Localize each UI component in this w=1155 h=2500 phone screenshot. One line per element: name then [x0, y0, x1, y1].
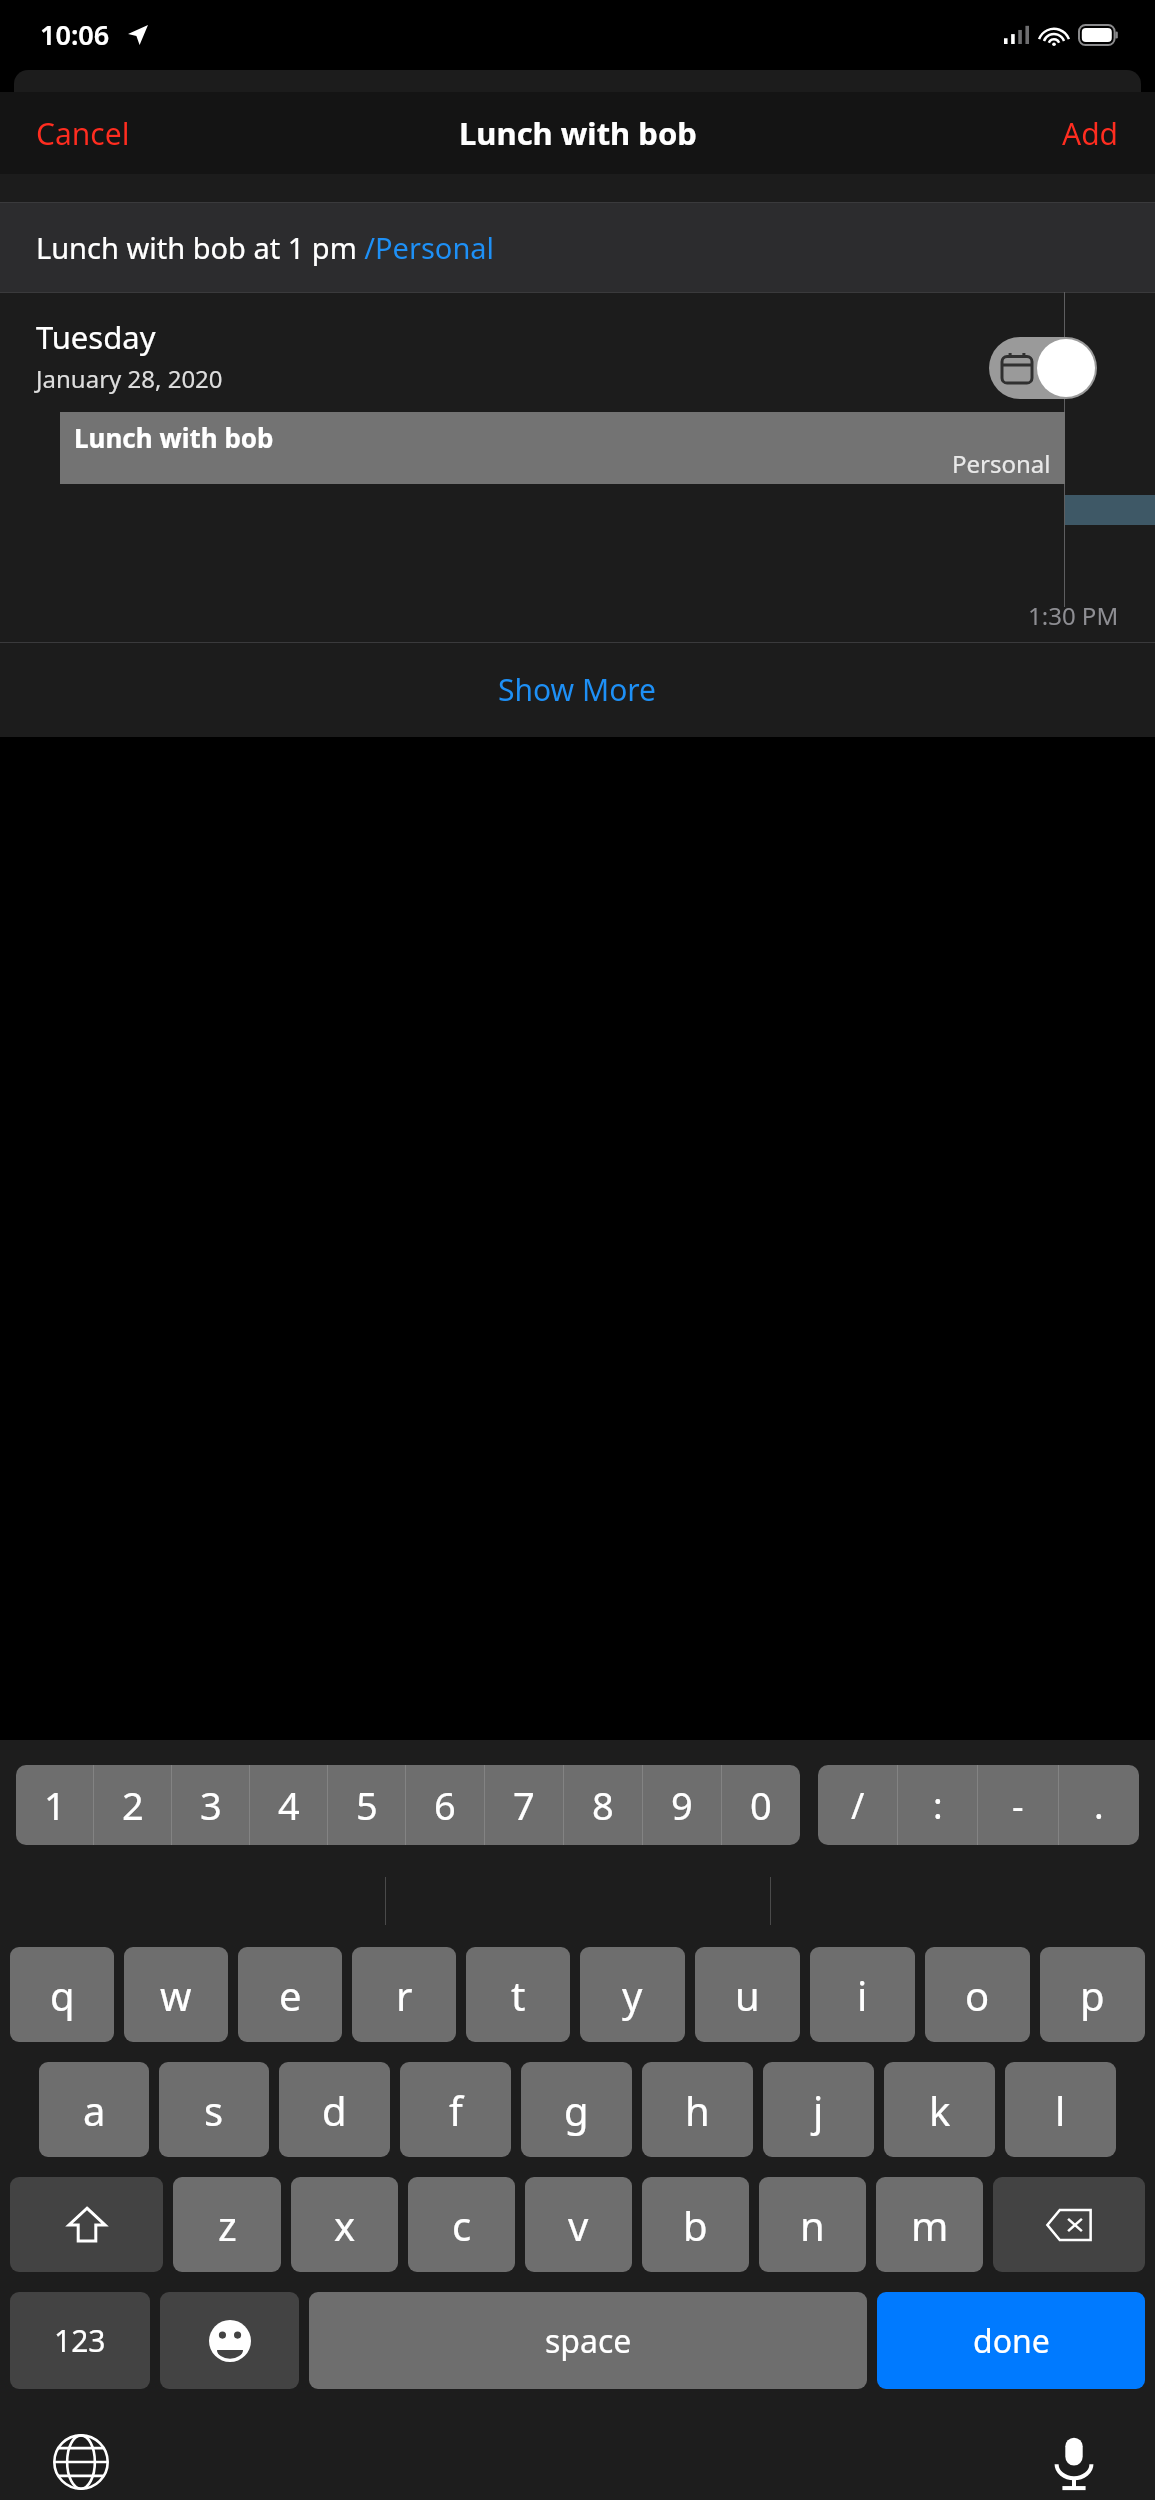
staticText: 3 — [200, 1779, 222, 1831]
button[interactable]: q — [10, 1947, 114, 2042]
button[interactable]: 5 — [328, 1765, 405, 1845]
staticText: : — [933, 1781, 943, 1830]
button[interactable]: b — [642, 2177, 749, 2272]
staticText: p — [1080, 1968, 1105, 2022]
staticText: z — [218, 2198, 237, 2252]
staticText: t — [511, 1968, 526, 2022]
button[interactable]: x — [291, 2177, 398, 2272]
button[interactable]: : — [898, 1765, 977, 1845]
staticText: Tuesday — [36, 316, 156, 358]
button[interactable]: k — [884, 2062, 995, 2157]
staticText: Add — [1062, 113, 1119, 154]
staticText: r — [396, 1968, 413, 2022]
button[interactable]: t — [466, 1947, 570, 2042]
button[interactable]: - — [978, 1765, 1058, 1845]
button[interactable]: Backspace — [993, 2177, 1145, 2272]
staticText: January 28, 2020 — [36, 362, 223, 395]
staticText: c — [452, 2198, 472, 2252]
button[interactable]: Dictation — [1045, 2433, 1103, 2491]
staticText: 1 — [44, 1779, 66, 1831]
staticText: 1:30 PM — [1028, 599, 1119, 632]
staticText: Show More — [498, 669, 657, 710]
staticText: 6 — [434, 1779, 456, 1831]
staticText: 2 — [122, 1779, 144, 1831]
staticText: m — [911, 2198, 949, 2252]
button[interactable]: done — [877, 2292, 1145, 2389]
staticText: f — [449, 2083, 463, 2137]
staticText: Lunch with bob — [74, 420, 274, 455]
button[interactable]: m — [876, 2177, 983, 2272]
button[interactable]: 1 — [16, 1765, 93, 1845]
staticText: q — [50, 1968, 75, 2022]
staticText: l — [1055, 2083, 1066, 2137]
staticText: j — [813, 2083, 824, 2137]
button[interactable]: 6 — [406, 1765, 484, 1845]
button[interactable]: 2 — [94, 1765, 171, 1845]
staticText: 5 — [356, 1779, 378, 1831]
button[interactable]: . — [1059, 1765, 1139, 1845]
button[interactable]: Shift — [10, 2177, 163, 2272]
staticText: Lunch with bob — [459, 112, 697, 154]
staticText: k — [929, 2083, 951, 2137]
button[interactable]: l — [1005, 2062, 1116, 2157]
button[interactable]: r — [352, 1947, 456, 2042]
button[interactable]: c — [408, 2177, 515, 2272]
button[interactable]: Emoji — [160, 2292, 299, 2389]
button[interactable]: 4 — [250, 1765, 327, 1845]
button[interactable]: o — [925, 1947, 1030, 2042]
button[interactable]: z — [173, 2177, 281, 2272]
staticText: . — [1094, 1781, 1104, 1830]
staticText: 9 — [671, 1779, 693, 1831]
staticText: 7 — [513, 1779, 535, 1831]
button[interactable]: w — [124, 1947, 228, 2042]
button[interactable]: j — [763, 2062, 874, 2157]
button[interactable]: d — [279, 2062, 390, 2157]
button[interactable]: 7 — [485, 1765, 563, 1845]
button[interactable]: u — [695, 1947, 800, 2042]
button[interactable]: 3 — [172, 1765, 249, 1845]
button[interactable]: p — [1040, 1947, 1145, 2042]
staticText: / — [851, 1781, 865, 1830]
button[interactable]: Change keyboard — [52, 2433, 110, 2491]
button[interactable]: Lunch with bob at 1 pm /Personal — [0, 202, 1155, 292]
staticText: b — [683, 2198, 708, 2252]
staticText: x — [334, 2198, 356, 2252]
staticText: e — [279, 1968, 302, 2022]
button[interactable]: n — [759, 2177, 866, 2272]
button[interactable]: 8 — [564, 1765, 642, 1845]
staticText: h — [685, 2083, 710, 2137]
button[interactable]: s — [159, 2062, 269, 2157]
staticText: u — [735, 1968, 760, 2022]
staticText: 4 — [278, 1779, 300, 1831]
button[interactable]: Add — [1026, 99, 1155, 168]
staticText: w — [160, 1968, 192, 2022]
button[interactable]: i — [810, 1947, 915, 2042]
button[interactable]: g — [521, 2062, 632, 2157]
button[interactable]: Toggle calendar — [989, 337, 1097, 399]
button[interactable]: e — [238, 1947, 342, 2042]
staticText: Personal — [952, 447, 1051, 480]
staticText: d — [322, 2083, 347, 2137]
button[interactable]: v — [525, 2177, 632, 2272]
button[interactable]: 123 — [10, 2292, 150, 2389]
staticText: space — [545, 2319, 632, 2363]
staticText: n — [800, 2198, 825, 2252]
button[interactable]: 0 — [722, 1765, 800, 1845]
button[interactable]: 9 — [643, 1765, 721, 1845]
button[interactable]: y — [580, 1947, 685, 2042]
button[interactable]: / — [818, 1765, 897, 1845]
button[interactable]: a — [39, 2062, 149, 2157]
button[interactable]: f — [400, 2062, 511, 2157]
button[interactable]: Lunch with bob — [60, 412, 1065, 484]
button[interactable]: Show More — [0, 642, 1155, 737]
staticText: Lunch with bob at 1 pm /Personal — [36, 228, 495, 267]
staticText: Cancel — [36, 113, 130, 154]
button[interactable]: Cancel — [0, 99, 166, 168]
staticText: 0 — [750, 1779, 772, 1831]
button[interactable]: h — [642, 2062, 753, 2157]
staticText: 8 — [592, 1779, 614, 1831]
staticText: s — [204, 2083, 224, 2137]
staticText: v — [568, 2198, 589, 2252]
button[interactable]: space — [309, 2292, 867, 2389]
staticText: g — [564, 2083, 589, 2137]
